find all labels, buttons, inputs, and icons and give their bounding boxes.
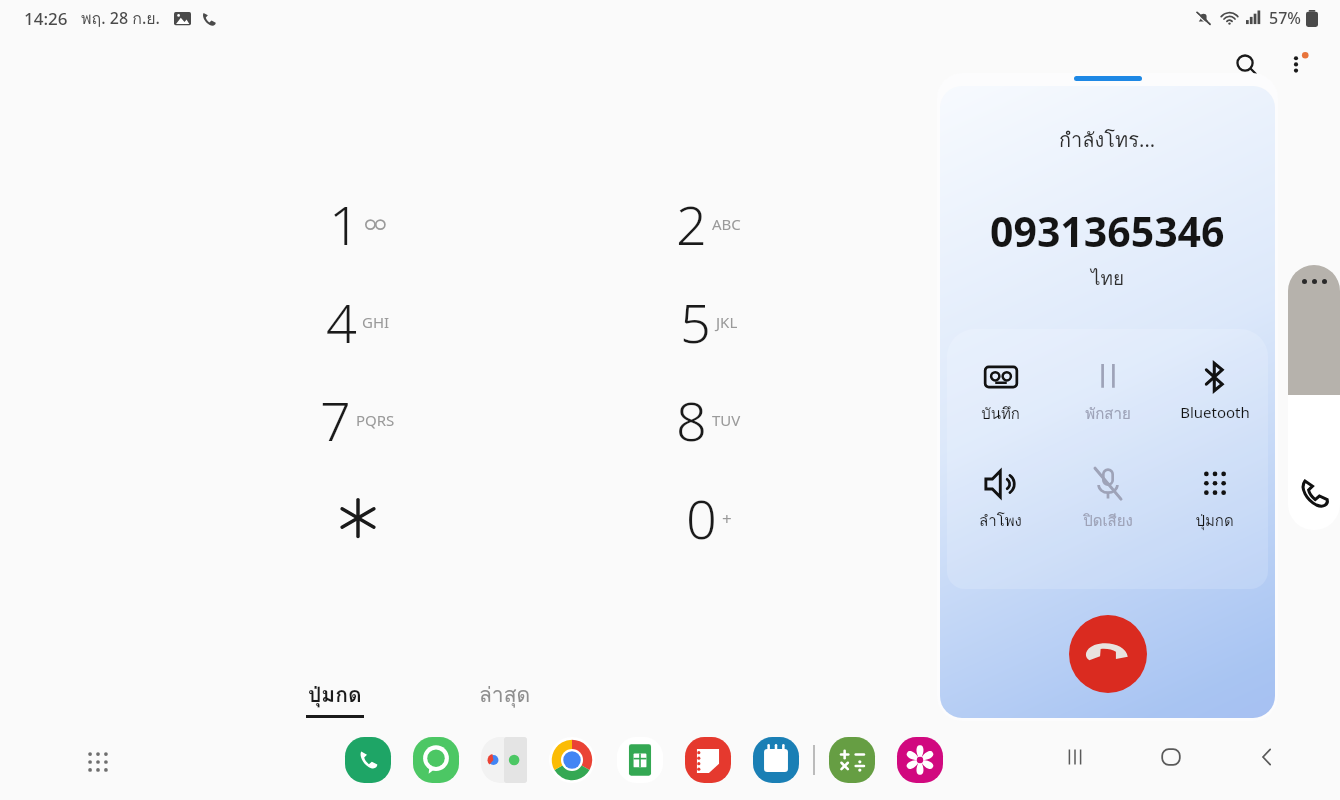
- button[interactable]: Bluetooth: [1161, 359, 1268, 422]
- button[interactable]: Apps: [78, 742, 118, 782]
- staticText: พักสาย: [1085, 402, 1131, 426]
- staticText: +: [722, 507, 732, 530]
- button[interactable]: ล่าสุด: [420, 678, 590, 711]
- button[interactable]: Home: [1148, 734, 1194, 780]
- button[interactable]: Call shortcut: [1288, 395, 1340, 530]
- button[interactable]: [182, 469, 533, 567]
- button[interactable]: ปุ่มกด: [250, 678, 420, 718]
- staticText: PQRS: [356, 410, 395, 430]
- button[interactable]: 8: [533, 371, 884, 469]
- button[interactable]: 7: [182, 371, 533, 469]
- staticText: DEF: [1064, 214, 1092, 234]
- staticText: ล่าสุด: [479, 678, 531, 711]
- button[interactable]: App 3: [549, 737, 595, 783]
- staticText: 5: [680, 285, 711, 359]
- button[interactable]: 5: [533, 273, 884, 371]
- button[interactable]: App 4: [617, 737, 663, 783]
- button[interactable]: App 0: [345, 737, 391, 783]
- staticText: บันทึก: [981, 402, 1020, 426]
- staticText: 57%: [1269, 7, 1301, 29]
- staticText: 2: [676, 187, 707, 261]
- staticText: ไทย: [1091, 263, 1125, 293]
- staticText: TUV: [712, 410, 741, 430]
- button[interactable]: App 1: [413, 737, 459, 783]
- staticText: กำลังโทร...: [1059, 124, 1156, 156]
- staticText: ABC: [712, 214, 741, 234]
- button[interactable]: ลำโพง: [947, 466, 1054, 533]
- staticText: GHI: [362, 312, 390, 332]
- button[interactable]: App 5: [685, 737, 731, 783]
- button[interactable]: App 6: [753, 737, 799, 783]
- button[interactable]: End call: [1069, 615, 1147, 693]
- staticText: พฤ. 28 ก.ย.: [81, 6, 160, 31]
- button[interactable]: 4: [182, 273, 533, 371]
- button[interactable]: Back: [1244, 734, 1290, 780]
- button[interactable]: #: [884, 469, 1235, 567]
- staticText: JKL: [716, 312, 738, 332]
- staticText: WXYZ: [1058, 410, 1098, 430]
- staticText: ปุ่มกด: [1195, 509, 1234, 533]
- staticText: ปิดเสียง: [1083, 509, 1133, 533]
- button[interactable]: 9: [884, 371, 1235, 469]
- button[interactable]: More options: [1274, 42, 1318, 86]
- button[interactable]: 0: [533, 469, 884, 567]
- staticText: 0: [686, 481, 717, 555]
- staticText: 8: [676, 383, 707, 457]
- button[interactable]: Recents: [1052, 734, 1098, 780]
- button[interactable]: 1: [182, 175, 533, 273]
- button[interactable]: บันทึก: [947, 359, 1054, 426]
- staticText: 14:26: [24, 7, 68, 30]
- button[interactable]: ปุ่มกด: [1161, 466, 1268, 533]
- button[interactable]: 6: [884, 273, 1235, 371]
- staticText: 0931365346: [990, 203, 1225, 259]
- button[interactable]: 2: [533, 175, 884, 273]
- staticText: ปุ่มกด: [308, 678, 362, 711]
- button[interactable]: ปิดเสียง: [1054, 466, 1161, 533]
- button[interactable]: App 8: [897, 737, 943, 783]
- staticText: 7: [320, 383, 351, 457]
- staticText: Bluetooth: [1180, 402, 1250, 422]
- button[interactable]: App 2: [481, 737, 527, 783]
- staticText: 1: [329, 187, 360, 261]
- staticText: ลำโพง: [979, 509, 1022, 533]
- button[interactable]: 3: [884, 175, 1235, 273]
- staticText: 3: [1028, 187, 1059, 261]
- button[interactable]: App 7: [829, 737, 875, 783]
- staticText: 4: [326, 285, 357, 359]
- button[interactable]: Search: [1224, 42, 1268, 86]
- button[interactable]: พักสาย: [1054, 359, 1161, 426]
- button[interactable]: Edge panel handle: [1288, 265, 1340, 395]
